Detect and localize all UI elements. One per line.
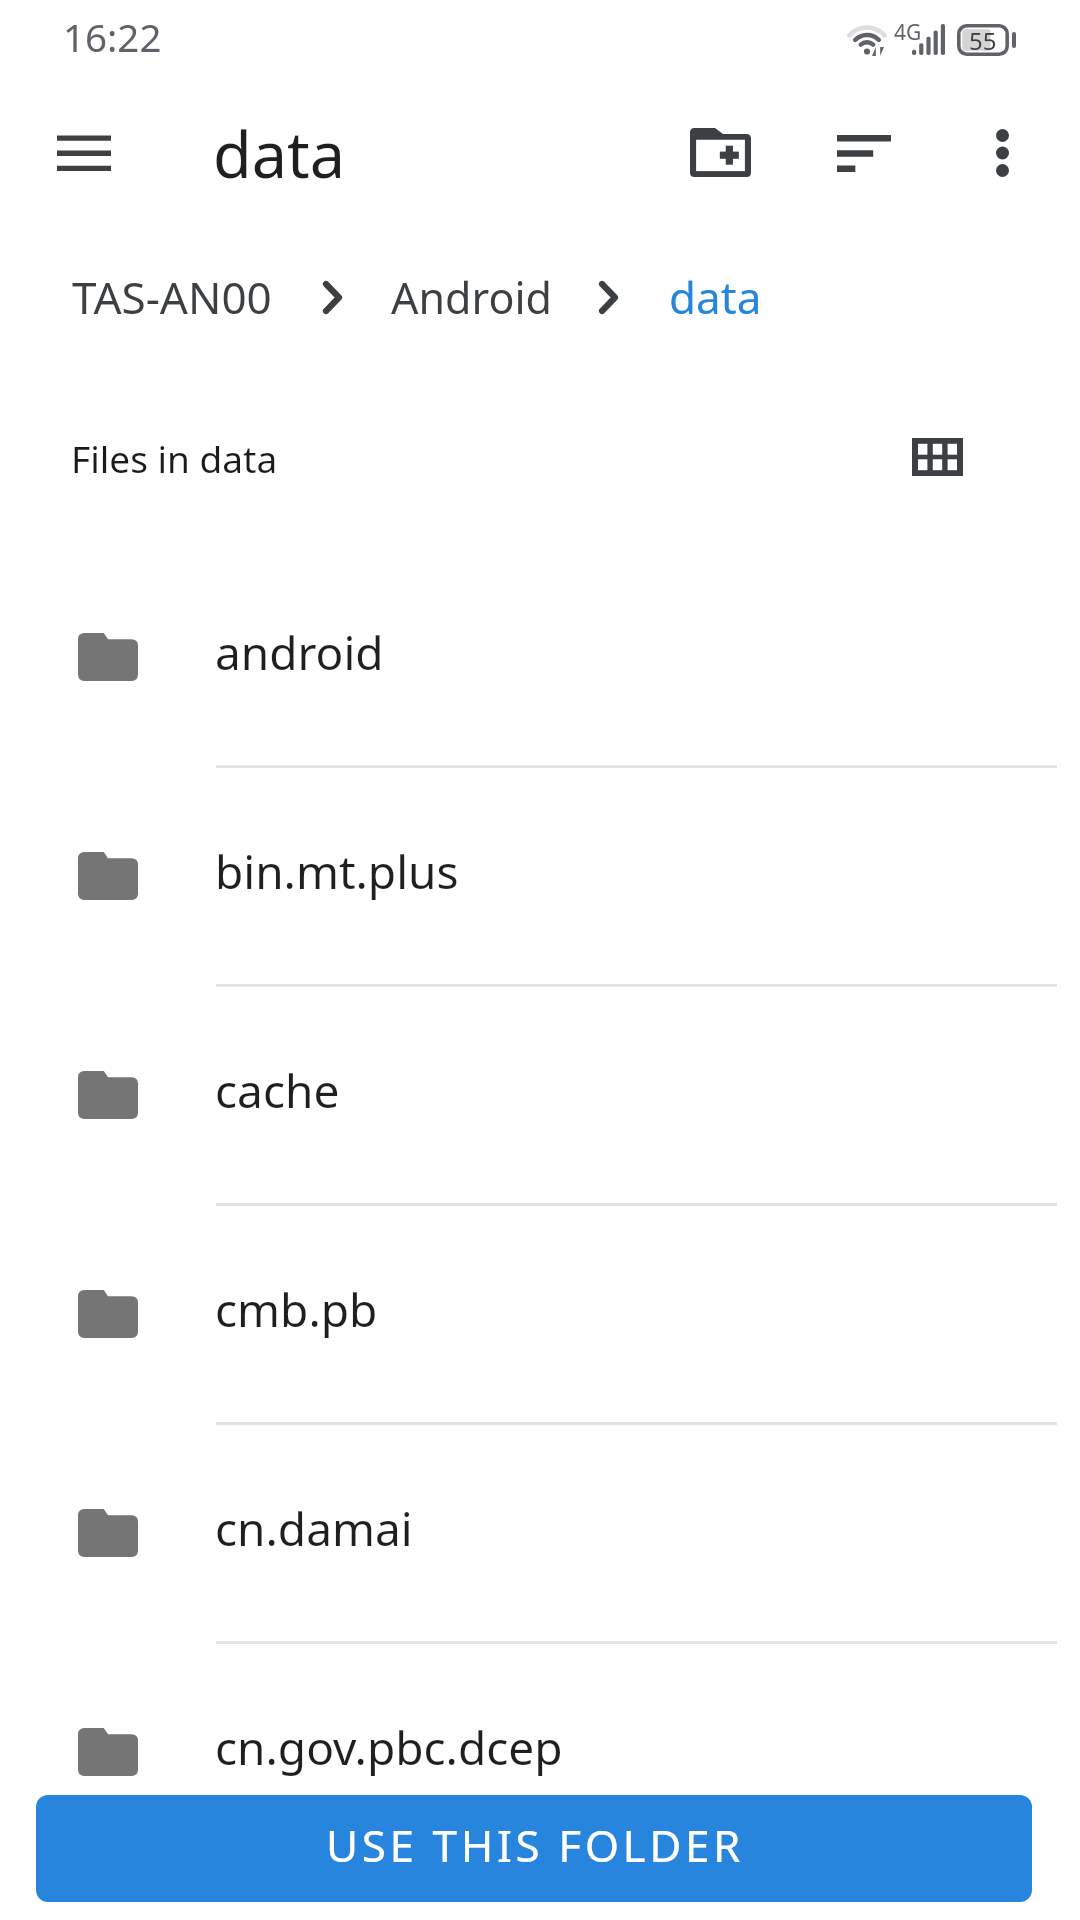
- button[interactable]: Navigation menu: [36, 104, 132, 200]
- button[interactable]: TAS-AN00: [72, 262, 272, 332]
- button[interactable]: data: [669, 262, 762, 332]
- staticText: 16:22: [63, 11, 162, 63]
- button[interactable]: Switch to grid view: [892, 412, 982, 502]
- staticText: data: [669, 267, 762, 327]
- staticText: Android: [391, 268, 552, 327]
- button[interactable]: USE THIS FOLDER: [36, 1795, 1032, 1902]
- staticText: bin.mt.plus: [215, 840, 459, 903]
- button[interactable]: cache: [0, 985, 1080, 1204]
- staticText: android: [215, 621, 384, 684]
- button[interactable]: cn.gov.pbc.dcep: [0, 1642, 1080, 1861]
- staticText: 4G: [894, 18, 922, 47]
- button[interactable]: cn.damai: [0, 1423, 1080, 1642]
- staticText: Files in data: [71, 433, 278, 483]
- staticText: cache: [215, 1059, 340, 1122]
- button[interactable]: bin.mt.plus: [0, 766, 1080, 985]
- staticText: TAS-AN00: [72, 267, 272, 327]
- staticText: data: [213, 111, 346, 197]
- staticText: 55: [969, 24, 997, 57]
- staticText: USE THIS FOLDER: [326, 1815, 745, 1875]
- button[interactable]: cmb.pb: [0, 1204, 1080, 1423]
- staticText: cmb.pb: [215, 1278, 378, 1341]
- staticText: cn.damai: [215, 1497, 413, 1560]
- button[interactable]: Create new folder: [672, 104, 768, 200]
- button[interactable]: More options: [954, 105, 1050, 201]
- button[interactable]: android: [0, 547, 1080, 766]
- button[interactable]: Sort: [816, 105, 912, 201]
- button[interactable]: Android: [391, 262, 552, 332]
- staticText: cn.gov.pbc.dcep: [215, 1716, 563, 1779]
